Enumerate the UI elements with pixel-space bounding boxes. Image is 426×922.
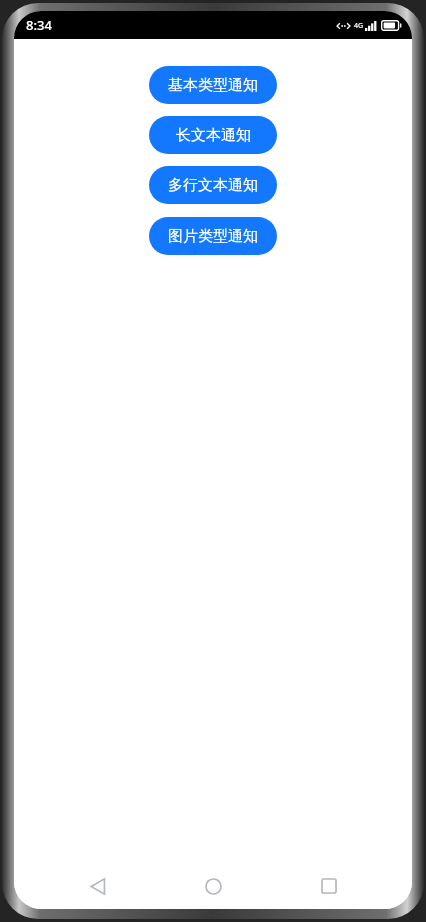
button[interactable]: Back — [66, 863, 130, 909]
staticText: 图片类型通知 — [168, 227, 258, 246]
button[interactable]: 图片类型通知 — [149, 217, 277, 255]
button[interactable]: 多行文本通知 — [149, 166, 277, 204]
button[interactable]: 长文本通知 — [149, 116, 277, 154]
staticText: 8:34 — [26, 16, 52, 34]
staticText: 基本类型通知 — [168, 76, 258, 95]
button[interactable]: Recents — [297, 863, 361, 909]
staticText: 长文本通知 — [176, 126, 251, 145]
button[interactable]: Home — [181, 863, 245, 909]
staticText: 4G — [354, 21, 364, 31]
staticText: 多行文本通知 — [168, 176, 258, 195]
button[interactable]: 基本类型通知 — [149, 66, 277, 104]
